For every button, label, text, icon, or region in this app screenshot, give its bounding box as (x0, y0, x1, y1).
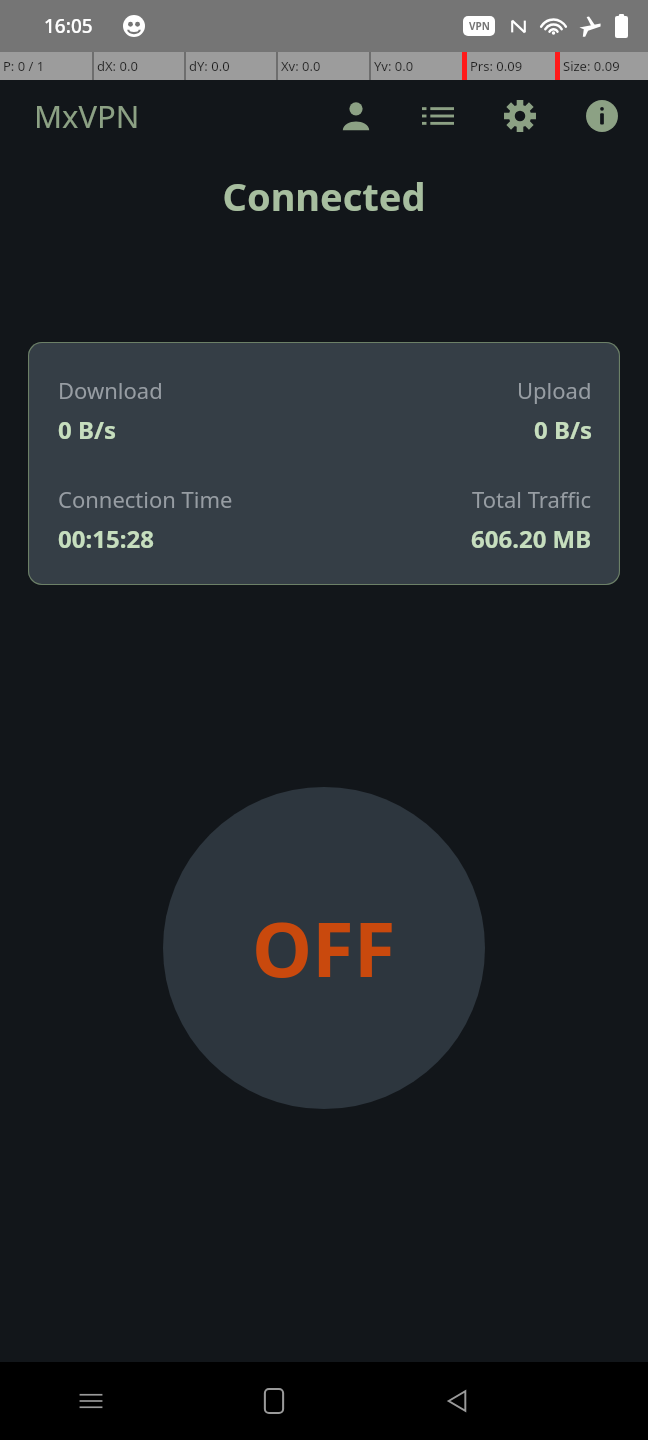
staticText: Download (58, 375, 163, 405)
staticText: P: 0 / 1 (3, 57, 45, 75)
button[interactable]: OFF (163, 787, 485, 1109)
staticText: Connection Time (58, 484, 233, 514)
button[interactable]: Recent apps (0, 1362, 182, 1440)
button[interactable]: Account (336, 96, 376, 136)
staticText: Yv: 0.0 (374, 57, 414, 75)
staticText: 00:15:28 (58, 522, 154, 555)
staticText: MxVPN (34, 95, 140, 137)
staticText: 16:05 (44, 13, 93, 39)
button[interactable]: Home (182, 1362, 365, 1440)
staticText: 0 B/s (534, 413, 592, 446)
staticText: dX: 0.0 (97, 57, 138, 75)
staticText: Prs: 0.09 (470, 57, 523, 75)
staticText: VPN (469, 19, 490, 33)
staticText: OFF (252, 896, 396, 1000)
staticText: Total Traffic (472, 484, 592, 514)
staticText: 606.20 MB (471, 522, 592, 555)
button[interactable]: Download (28, 342, 620, 585)
staticText: 0 B/s (58, 413, 116, 446)
button[interactable]: Server list (418, 96, 458, 136)
staticText: Upload (517, 375, 592, 405)
button[interactable]: Back (365, 1362, 548, 1440)
staticText: Connected (0, 170, 648, 222)
button[interactable]: Settings (500, 96, 540, 136)
staticText: Size: 0.09 (563, 57, 620, 75)
staticText: dY: 0.0 (189, 57, 230, 75)
button[interactable]: Info (582, 96, 622, 136)
staticText: Xv: 0.0 (281, 57, 321, 75)
